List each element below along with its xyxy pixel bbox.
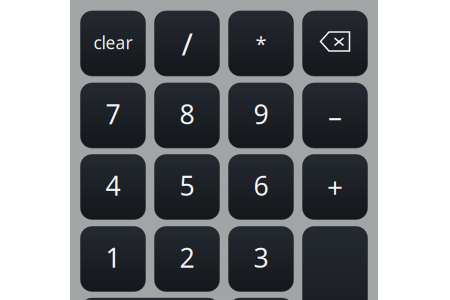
button[interactable]: * — [0, 0, 450, 300]
staticText: 2 — [179, 240, 194, 275]
button[interactable]: Delete — [0, 0, 450, 300]
staticText: 9 — [253, 96, 268, 132]
staticText: 6 — [253, 168, 268, 203]
staticText: 3 — [253, 240, 268, 275]
staticText: * — [255, 30, 266, 57]
button[interactable]: 9 — [0, 0, 450, 300]
staticText: – — [328, 97, 342, 134]
button[interactable]: 6 — [0, 0, 450, 300]
staticText: clear — [93, 31, 132, 54]
button[interactable]: 5 — [0, 0, 450, 300]
button[interactable]: / — [0, 0, 450, 300]
staticText: 8 — [179, 96, 194, 132]
button[interactable]: 1 — [0, 0, 450, 300]
button[interactable]: Zero — [0, 0, 450, 300]
button[interactable]: Decimal point — [0, 0, 450, 300]
staticText: 5 — [179, 168, 194, 203]
button[interactable]: Enter — [0, 0, 450, 300]
staticText: 4 — [105, 168, 120, 203]
button[interactable]: 7 — [0, 0, 450, 300]
staticText: / — [181, 23, 192, 64]
button[interactable]: 4 — [0, 0, 450, 300]
button[interactable]: clear — [0, 0, 450, 300]
button[interactable]: 2 — [0, 0, 450, 300]
staticText: + — [327, 168, 343, 206]
staticText: 7 — [105, 96, 120, 132]
button[interactable]: 8 — [0, 0, 450, 300]
staticText: 1 — [105, 240, 120, 275]
button[interactable]: 3 — [0, 0, 450, 300]
button[interactable]: Minus — [0, 0, 450, 300]
button[interactable]: Plus — [0, 0, 450, 300]
